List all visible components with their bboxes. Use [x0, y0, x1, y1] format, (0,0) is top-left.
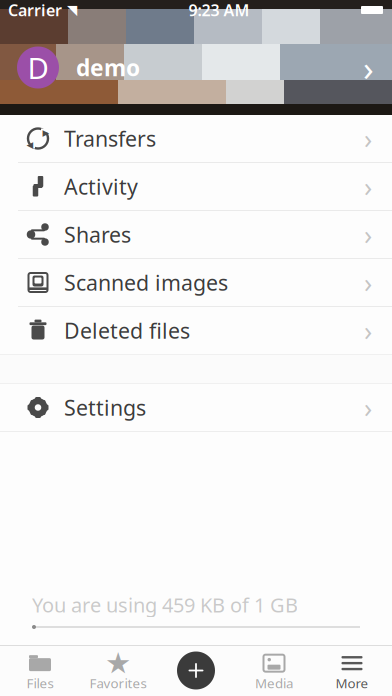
- button[interactable]: ▸: [0, 115, 392, 162]
- staticText: ▸: [42, 125, 49, 140]
- staticText: You are using 459 KB of 1 GB: [32, 591, 298, 618]
- staticText: Transfers: [64, 124, 156, 153]
- button[interactable]: Activity: [0, 163, 392, 210]
- button[interactable]: Shares: [0, 211, 392, 258]
- staticText: Favorites: [89, 674, 146, 692]
- button[interactable]: Media: [235, 645, 313, 696]
- staticText: ›: [363, 44, 374, 90]
- staticText: More: [335, 674, 368, 692]
- staticText: ◂: [26, 137, 33, 152]
- staticText: Files: [26, 674, 53, 692]
- staticText: Scanned images: [64, 268, 228, 297]
- staticText: ›: [364, 265, 372, 300]
- staticText: 9:23 AM: [188, 0, 249, 21]
- staticText: ◥: [67, 2, 77, 17]
- staticText: ›: [364, 313, 372, 348]
- staticText: ›: [364, 169, 372, 204]
- staticText: D: [27, 48, 48, 87]
- button[interactable]: Add: [157, 645, 235, 696]
- button[interactable]: Deleted files: [0, 307, 392, 354]
- staticText: demo: [76, 52, 140, 82]
- button[interactable]: Scanned images: [0, 259, 392, 306]
- button[interactable]: Files: [1, 645, 79, 696]
- staticText: ★: [105, 646, 131, 680]
- staticText: Shares: [64, 220, 131, 249]
- button[interactable]: Settings: [0, 384, 392, 431]
- staticText: ›: [364, 217, 372, 252]
- staticText: ›: [364, 121, 372, 156]
- button[interactable]: More: [313, 645, 391, 696]
- button[interactable]: ★: [79, 645, 157, 696]
- button[interactable]: demo account: [0, 39, 392, 95]
- staticText: ›: [364, 390, 372, 425]
- staticText: Deleted files: [64, 316, 190, 345]
- staticText: Activity: [64, 172, 138, 201]
- staticText: Settings: [64, 393, 146, 422]
- staticText: Media: [255, 674, 293, 692]
- staticText: Carrier: [8, 0, 62, 21]
